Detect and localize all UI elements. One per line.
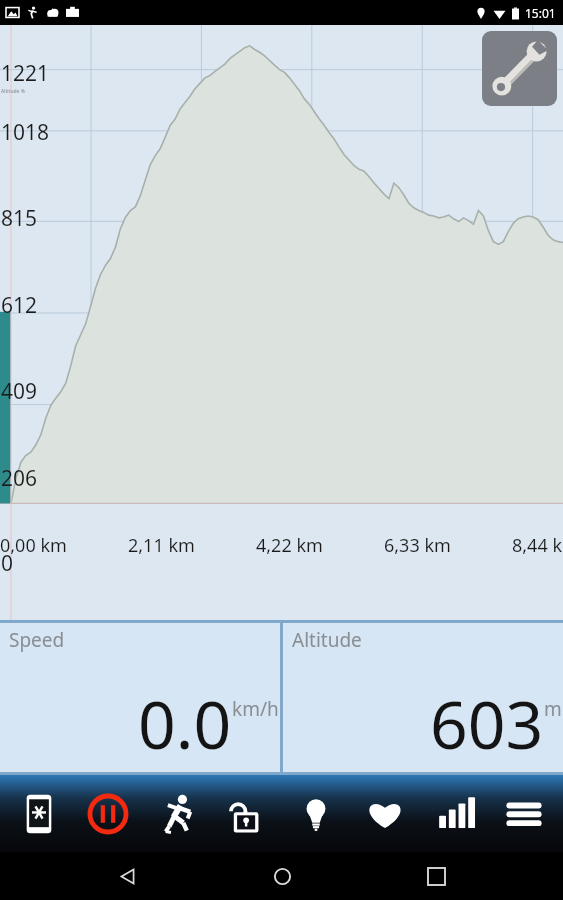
staticText: 8,44 k: [512, 533, 563, 558]
staticText: 0: [1, 549, 14, 578]
staticText: 206: [1, 464, 38, 493]
staticText: 815: [1, 204, 38, 233]
button[interactable]: Light: [287, 778, 345, 850]
staticText: 4,22 km: [256, 533, 323, 558]
button[interactable]: Menu: [495, 778, 553, 850]
button[interactable]: Activity: [149, 778, 207, 850]
staticText: 603: [430, 678, 544, 768]
button[interactable]: Statistics: [426, 778, 484, 850]
staticText: Speed: [9, 627, 65, 653]
button[interactable]: Settings: [482, 31, 557, 106]
button[interactable]: Home: [254, 852, 310, 900]
staticText: m: [544, 696, 562, 722]
button[interactable]: Pause: [79, 778, 137, 850]
staticText: 409: [1, 377, 38, 406]
staticText: 6,33 km: [384, 533, 451, 558]
staticText: km/h: [232, 696, 279, 722]
button[interactable]: Recent apps: [408, 852, 464, 900]
staticText: 15:01: [525, 5, 556, 21]
staticText: 1221: [1, 59, 50, 88]
button[interactable]: Altitude: [283, 623, 563, 772]
staticText: Altitude: [292, 627, 362, 653]
staticText: 612: [1, 291, 38, 320]
staticText: 0,00 km: [0, 533, 67, 558]
staticText: 0.0: [138, 678, 232, 768]
button[interactable]: Back: [99, 852, 155, 900]
button[interactable]: Speed: [0, 623, 280, 772]
staticText: 2,11 km: [128, 533, 195, 558]
button[interactable]: Heart rate: [356, 778, 414, 850]
button[interactable]: Screen lock: [10, 778, 68, 850]
staticText: 1018: [1, 118, 50, 147]
button[interactable]: Unlock: [218, 778, 276, 850]
staticText: Altitude %: [1, 88, 25, 95]
